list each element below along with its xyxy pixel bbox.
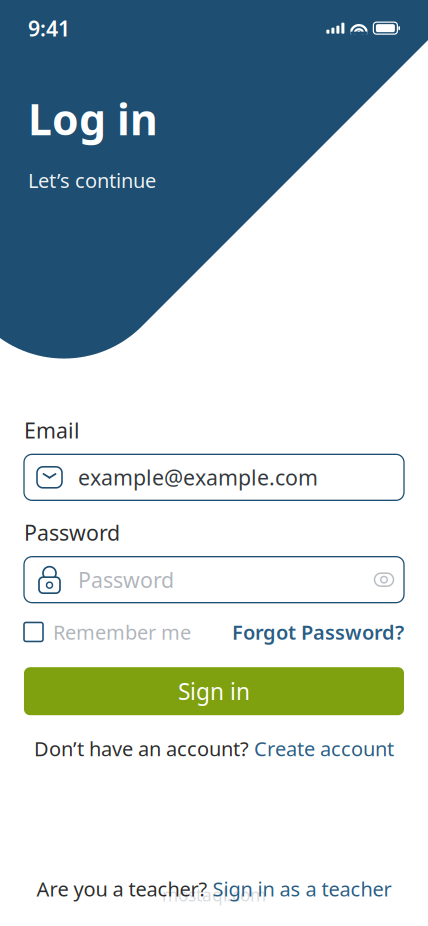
- staticText: Remember me: [53, 619, 191, 645]
- staticText: Sign in as a teacher: [212, 875, 391, 902]
- staticText: Log in: [28, 90, 158, 147]
- staticText: 9:41: [28, 14, 70, 42]
- staticText: Password: [24, 518, 120, 547]
- staticText: Email: [24, 416, 80, 444]
- staticText: Password: [78, 565, 174, 594]
- staticText: mostaql.com: [162, 883, 266, 906]
- button[interactable]: Remember me: [24, 619, 191, 645]
- staticText: Create account: [254, 735, 394, 762]
- button[interactable]: Sign in as a teacher: [212, 875, 391, 902]
- staticText: Are you a teacher?: [36, 875, 207, 902]
- staticText: example@example.com: [78, 463, 318, 491]
- button[interactable]: Sign in: [24, 667, 404, 715]
- button[interactable]: Forgot Password?: [232, 619, 404, 645]
- staticText: Don’t have an account?: [34, 735, 249, 762]
- button[interactable]: Show password: [364, 558, 404, 602]
- staticText: Forgot Password?: [232, 619, 404, 645]
- button[interactable]: Create account: [254, 735, 394, 762]
- staticText: Let’s continue: [28, 167, 156, 194]
- staticText: Sign in: [178, 676, 250, 706]
